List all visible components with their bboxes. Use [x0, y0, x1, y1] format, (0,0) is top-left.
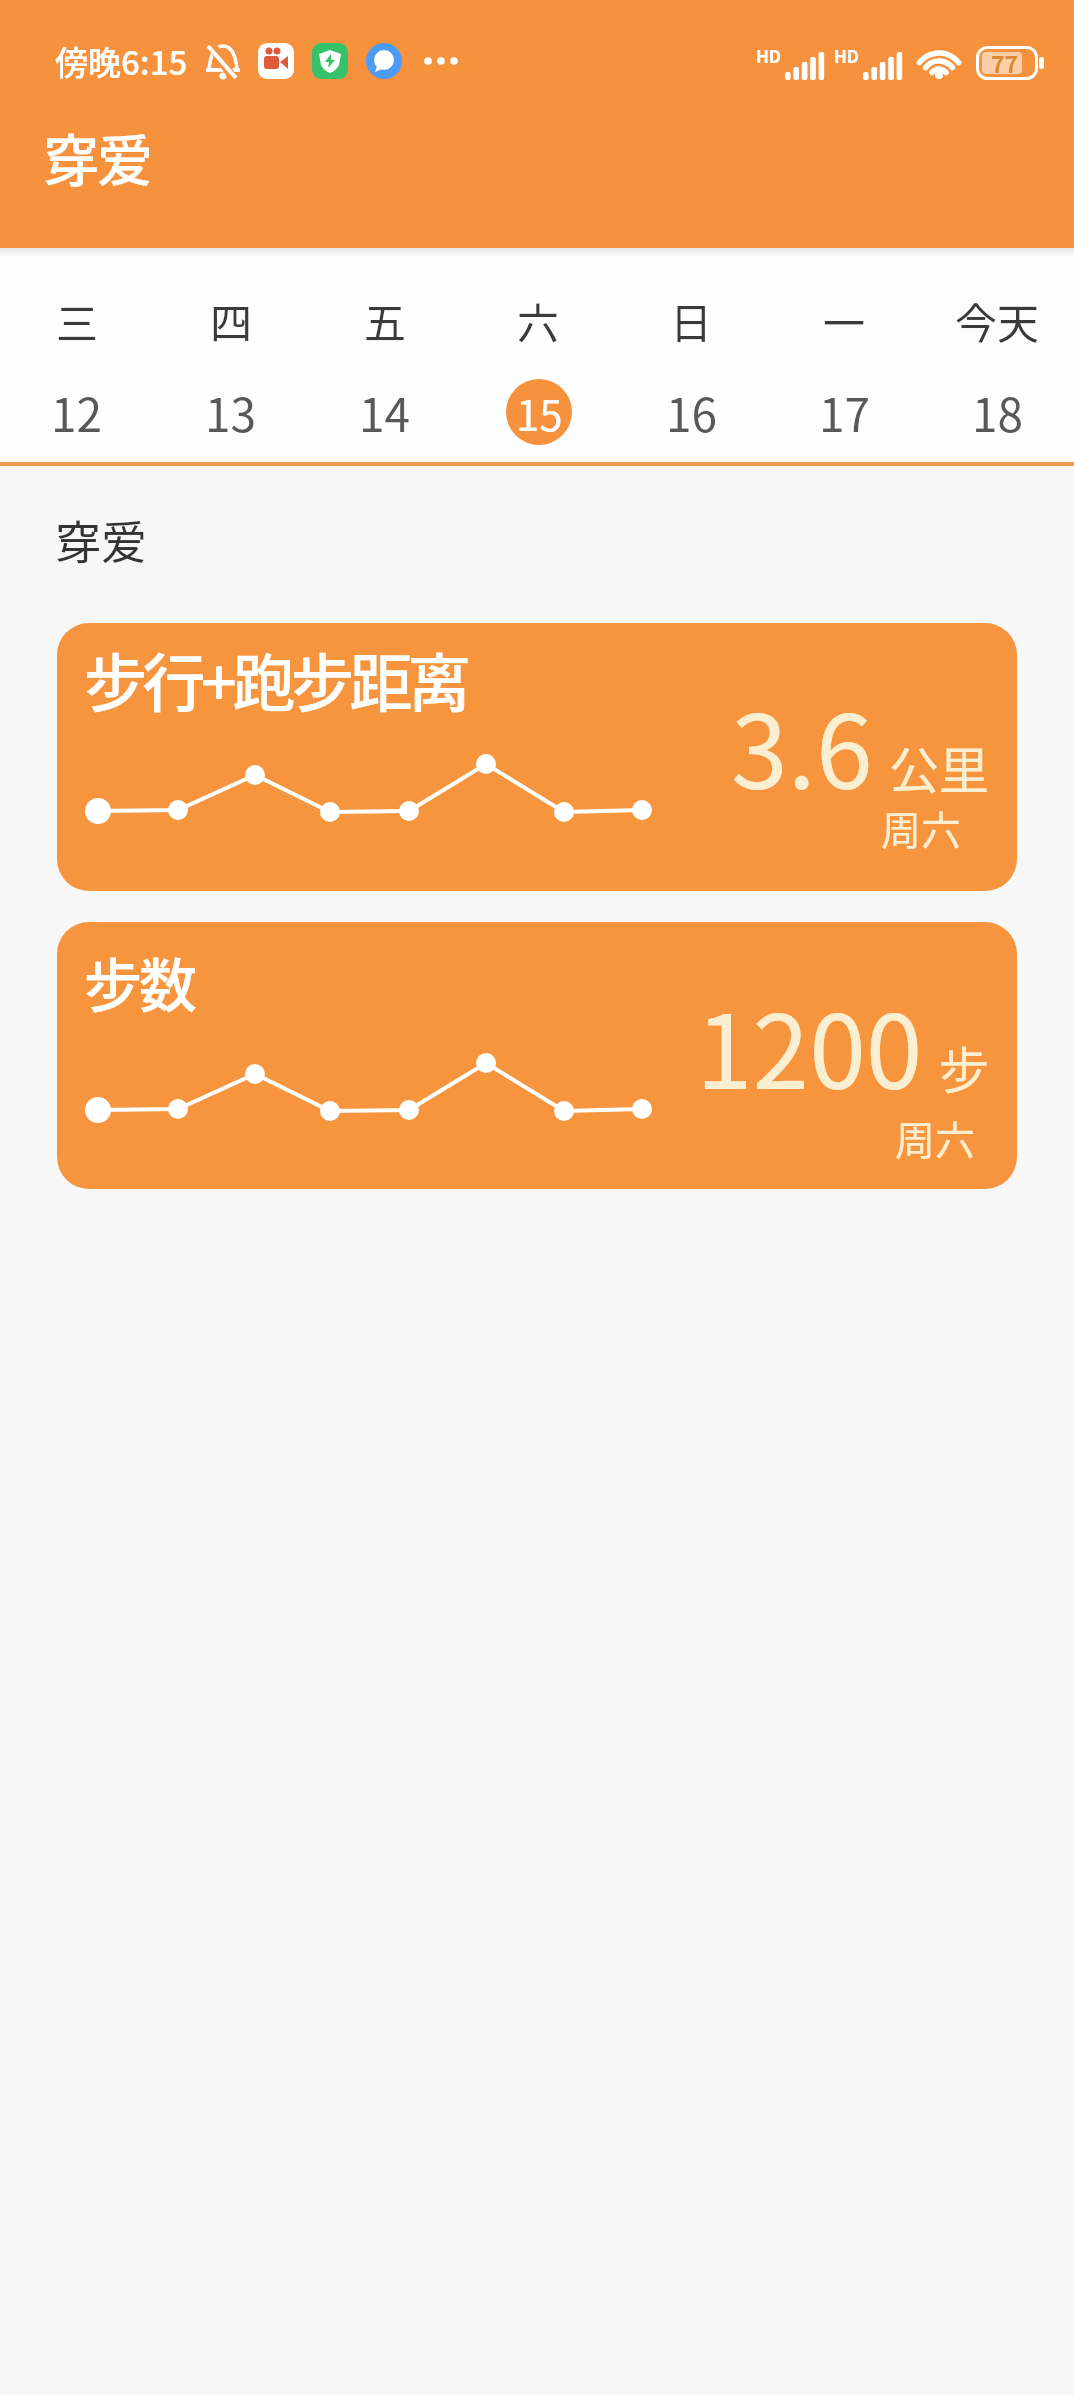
- staticText: 16: [666, 379, 718, 445]
- staticText: HD: [834, 43, 860, 68]
- button[interactable]: 日: [615, 248, 768, 462]
- staticText: 14: [359, 379, 411, 445]
- staticText: 公里: [889, 731, 989, 803]
- staticText: 今天: [955, 290, 1040, 351]
- staticText: 日: [670, 290, 713, 351]
- staticText: 六: [517, 290, 560, 351]
- button[interactable]: 四: [154, 248, 308, 462]
- staticText: HD: [756, 43, 782, 68]
- staticText: 步行+跑步距离: [84, 633, 467, 724]
- staticText: 3.6: [731, 671, 873, 819]
- staticText: 77: [991, 46, 1019, 78]
- staticText: 12: [51, 379, 103, 445]
- button[interactable]: 六: [462, 248, 615, 462]
- staticText: 周六: [881, 799, 961, 857]
- staticText: 1200: [696, 971, 923, 1119]
- button[interactable]: 步数: [57, 922, 1017, 1189]
- button[interactable]: 三: [0, 248, 154, 462]
- staticText: 穿爱: [55, 506, 147, 573]
- staticText: 13: [205, 379, 257, 445]
- staticText: 一: [823, 290, 866, 351]
- staticText: 步数: [84, 940, 195, 1024]
- staticText: 18: [972, 379, 1024, 445]
- staticText: 15: [516, 382, 563, 443]
- staticText: 傍晚6:15: [55, 37, 188, 85]
- staticText: 三: [56, 290, 99, 351]
- staticText: 五: [364, 290, 407, 351]
- staticText: 周六: [895, 1109, 975, 1167]
- staticText: 步: [939, 1031, 989, 1103]
- button[interactable]: 一: [768, 248, 921, 462]
- staticText: 穿爱: [44, 116, 152, 197]
- staticText: 四: [210, 290, 253, 351]
- staticText: 17: [819, 379, 871, 445]
- button[interactable]: 步行+跑步距离: [57, 623, 1017, 891]
- button[interactable]: 五: [308, 248, 462, 462]
- button[interactable]: 今天: [921, 248, 1074, 462]
